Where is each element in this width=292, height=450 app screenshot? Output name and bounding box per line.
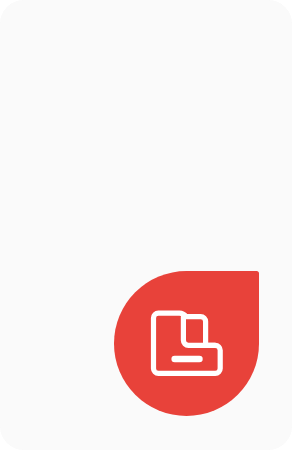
button[interactable]: App logo (114, 271, 259, 416)
